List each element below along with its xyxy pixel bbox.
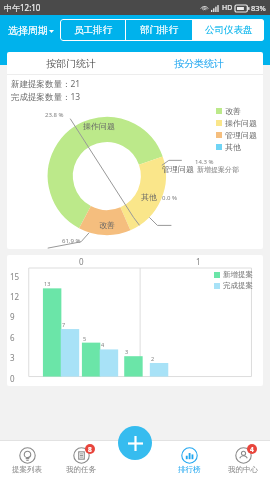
staticText: 1 [196,256,201,267]
staticText: 0 [79,256,84,267]
staticText: 新建提案数量：21 [11,78,81,90]
staticText: 按部门统计 [46,57,96,70]
staticText: HD [222,3,233,13]
staticText: 6 [10,332,15,343]
staticText: 排行榜 [178,465,201,474]
staticText: 完成提案数量：13 [11,91,81,103]
staticText: 改善 [225,106,241,116]
staticText: 中午12:10 [4,2,41,13]
button[interactable]: 按部门统计 [7,52,135,74]
staticText: 3 [10,352,15,363]
staticText: 操作问题 [83,121,115,131]
staticText: 9 [10,311,15,322]
staticText: 4 [250,445,254,454]
staticText: 0 [10,373,15,384]
staticText: 我的任务 [66,465,96,474]
staticText: 3 [125,348,129,355]
staticText: 操作问题 [225,118,257,128]
staticText: 部门排行 [140,24,178,36]
staticText: 其他 [141,192,157,202]
staticText: 7 [62,321,66,328]
button[interactable]: 公司仪表盘 [193,19,264,41]
button[interactable]: 8 [54,440,108,480]
staticText: 新增提案 [223,270,253,279]
staticText: 61.9 % [62,237,81,245]
button[interactable]: 排行榜 [162,440,216,480]
staticText: 4 [101,341,105,348]
staticText: 0.0 % [162,194,178,202]
staticText: 完成提案 [223,281,253,290]
button[interactable]: 按分类统计 [135,52,263,74]
staticText: 13 [44,280,51,287]
button[interactable]: 选择周期 [6,21,56,40]
button[interactable]: 新增提案 [118,426,152,460]
staticText: 员工排行 [74,24,112,36]
staticText: 我的中心 [228,465,258,474]
staticText: 2 [151,355,155,362]
staticText: 管理问题 [225,130,257,140]
staticText: 8 [88,445,92,454]
button[interactable]: 4 [216,440,270,480]
staticText: 83% [251,3,266,13]
staticText: 选择周期 [8,24,48,37]
staticText: 公司仪表盘 [205,24,253,36]
button[interactable]: 员工排行 [60,19,125,41]
staticText: 管理问题 [162,164,194,174]
button[interactable]: 提案列表 [0,440,54,480]
staticText: 提案列表 [12,465,42,474]
staticText: 14.3 % [195,158,214,166]
staticText: 5 [83,335,87,342]
staticText: 新增提案分部 [197,165,239,174]
staticText: 其他 [225,142,241,152]
staticText: 按分类统计 [174,57,224,70]
staticText: 15 [10,271,20,282]
staticText: 12 [10,291,20,302]
button[interactable]: 部门排行 [126,19,192,41]
staticText: 改善 [99,220,115,230]
staticText: 23.8 % [45,111,64,119]
